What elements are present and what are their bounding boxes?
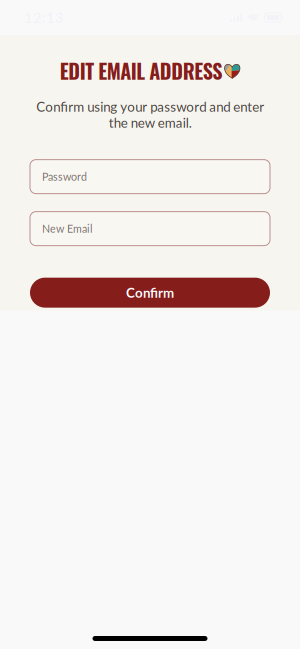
staticText: Confirm using your password and enter th…: [36, 99, 264, 131]
staticText: EDIT EMAIL ADDRESS: [60, 56, 222, 86]
button[interactable]: Confirm: [30, 278, 270, 308]
staticText: Password: [42, 170, 87, 183]
staticText: New Email: [42, 222, 93, 235]
staticText: Confirm: [126, 285, 174, 301]
button[interactable]: New Email: [30, 212, 270, 246]
button[interactable]: Password: [30, 160, 270, 194]
